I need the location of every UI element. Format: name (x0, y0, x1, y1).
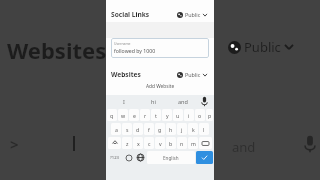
staticText: v (159, 140, 162, 147)
staticText: a (115, 126, 118, 133)
button[interactable]: m (188, 137, 198, 149)
button[interactable]: t (151, 109, 161, 121)
staticText: and (232, 138, 256, 156)
button[interactable]: z (122, 137, 132, 149)
button[interactable]: Backspace (199, 137, 212, 149)
staticText: z (126, 140, 129, 147)
staticText: u (176, 112, 180, 119)
button[interactable]: I (109, 95, 138, 108)
button[interactable]: Enter (196, 151, 213, 164)
button[interactable]: n (177, 137, 187, 149)
staticText: s (126, 126, 129, 133)
staticText: Social Links (111, 10, 150, 19)
staticText: w (121, 112, 126, 119)
staticText: Add Website (146, 83, 175, 90)
staticText: c (148, 140, 151, 147)
button[interactable]: r (140, 109, 150, 121)
staticText: l (203, 126, 205, 133)
staticText: g (158, 126, 162, 133)
staticText: Public (244, 38, 281, 56)
staticText: j (181, 126, 183, 133)
staticText: b (169, 140, 173, 147)
staticText: and (178, 98, 188, 105)
staticText: i (188, 112, 190, 119)
button[interactable]: j (177, 123, 187, 135)
button[interactable]: i (184, 109, 194, 121)
button[interactable]: Public (175, 10, 209, 19)
button[interactable]: h (166, 123, 176, 135)
button[interactable]: o (195, 109, 205, 121)
staticText: f (148, 126, 150, 133)
button[interactable]: e (129, 109, 139, 121)
button[interactable]: l (199, 123, 209, 135)
button[interactable]: g (155, 123, 165, 135)
button[interactable]: y (162, 109, 172, 121)
button[interactable]: English (147, 151, 195, 164)
staticText: English (163, 155, 179, 161)
button[interactable]: k (188, 123, 198, 135)
button[interactable]: q (107, 109, 117, 121)
button[interactable]: w (118, 109, 128, 121)
staticText: Public (185, 71, 201, 78)
staticText: n (180, 140, 184, 147)
staticText: r (144, 112, 147, 119)
button[interactable]: Shift (108, 137, 121, 149)
staticText: e (133, 112, 136, 119)
button[interactable]: c (144, 137, 154, 149)
staticText: Public (185, 11, 201, 18)
staticText: I (123, 98, 125, 105)
button[interactable]: d (133, 123, 143, 135)
staticText: y (166, 112, 169, 119)
button[interactable]: Change language (135, 150, 146, 165)
staticText: Websites (111, 70, 141, 79)
button[interactable]: Add Website (106, 81, 214, 92)
button[interactable]: f (144, 123, 154, 135)
button[interactable]: and (168, 95, 198, 108)
staticText: x (137, 140, 140, 147)
staticText: k (192, 126, 195, 133)
staticText: m (191, 140, 196, 147)
staticText: Username (114, 41, 131, 46)
button[interactable]: u (173, 109, 183, 121)
staticText: ?123 (110, 155, 120, 161)
button[interactable]: Emoji (123, 150, 134, 165)
staticText: hi (151, 98, 156, 105)
button[interactable]: Username (111, 38, 209, 58)
staticText: d (136, 126, 140, 133)
button[interactable]: s (122, 123, 132, 135)
button[interactable]: p (206, 109, 213, 121)
button[interactable]: ?123 (107, 151, 122, 164)
staticText: followed by 1000 (114, 47, 156, 54)
staticText: > (10, 134, 19, 154)
staticText: Websites (7, 35, 107, 65)
button[interactable]: a (111, 123, 121, 135)
button[interactable]: b (166, 137, 176, 149)
staticText: p (208, 112, 212, 119)
staticText: h (169, 126, 173, 133)
button[interactable]: Public (175, 70, 209, 79)
button[interactable]: x (133, 137, 143, 149)
button[interactable]: v (155, 137, 165, 149)
button[interactable]: Voice input (198, 95, 211, 108)
staticText: q (110, 112, 114, 119)
button[interactable]: hi (138, 95, 168, 108)
staticText: o (198, 112, 202, 119)
staticText: t (155, 112, 157, 119)
